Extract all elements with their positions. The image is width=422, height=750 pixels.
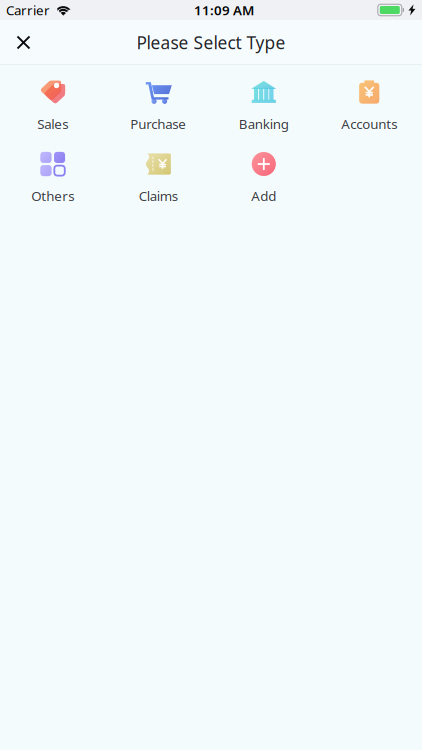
staticText: Accounts	[341, 115, 397, 133]
button[interactable]: Sales	[0, 65, 105, 137]
staticText: Purchase	[130, 115, 186, 133]
button[interactable]: Add	[211, 137, 316, 209]
button[interactable]: Claims	[105, 137, 211, 209]
button[interactable]: Accounts	[316, 65, 422, 137]
staticText: Please Select Type	[136, 31, 285, 54]
staticText: Claims	[139, 187, 178, 205]
button[interactable]: Purchase	[105, 65, 211, 137]
staticText: Others	[31, 187, 74, 205]
staticText: Add	[251, 187, 276, 205]
staticText: Banking	[239, 115, 289, 133]
button[interactable]: Close	[0, 20, 44, 65]
button[interactable]: Others	[0, 137, 105, 209]
staticText: Carrier	[6, 1, 50, 19]
button[interactable]: Banking	[211, 65, 316, 137]
staticText: Sales	[37, 115, 68, 133]
staticText: 11:09 AM	[194, 1, 254, 19]
